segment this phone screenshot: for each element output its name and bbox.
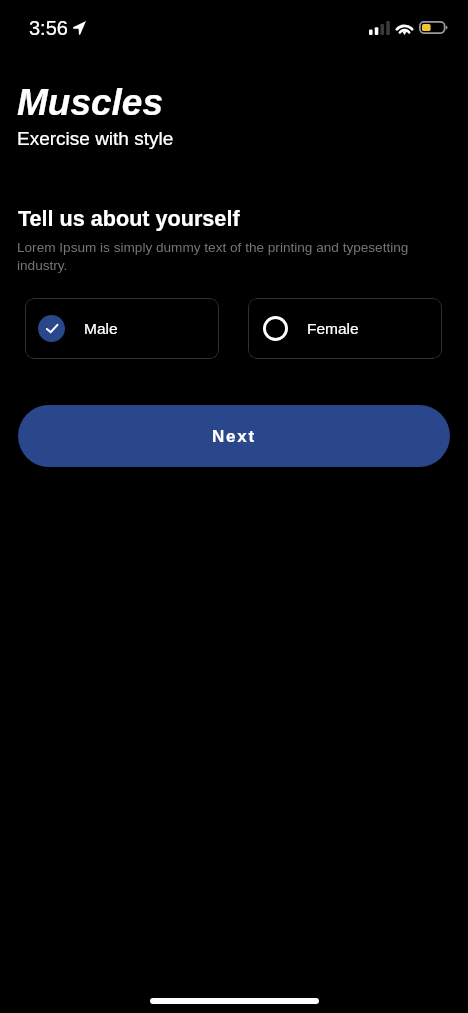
other: Cellular signal [369, 21, 390, 35]
other: Battery [419, 21, 448, 34]
staticText: Lorem Ipsum is simply dummy text of the … [17, 240, 417, 273]
button[interactable]: Female [248, 298, 442, 359]
staticText: Muscles [17, 82, 164, 123]
staticText: 3:56 [29, 17, 68, 39]
staticText: Exercise with style [17, 128, 174, 149]
staticText: Next [212, 427, 257, 446]
button[interactable]: Male [25, 298, 219, 359]
staticText: Female [307, 320, 359, 337]
other: Location [73, 21, 86, 35]
button[interactable]: Next [18, 405, 450, 467]
staticText: Tell us about yourself [18, 206, 240, 230]
other: Wi-Fi [395, 21, 414, 34]
staticText: Male [84, 320, 118, 337]
